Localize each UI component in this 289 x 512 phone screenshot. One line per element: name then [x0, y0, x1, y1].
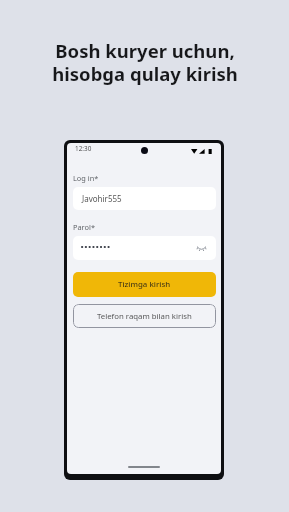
button[interactable]: Tizimga kirish	[73, 272, 216, 297]
button[interactable]: Telefon raqam bilan kirish	[73, 304, 216, 328]
staticText: Bosh kuryer uchun, hisobga qulay kirish	[52, 38, 238, 86]
staticText: Parol*	[73, 222, 95, 232]
button[interactable]: Show password	[73, 236, 216, 260]
staticText: 12:30	[75, 144, 92, 153]
staticText: Tizimga kirish	[118, 279, 171, 290]
staticText: Telefon raqam bilan kirish	[97, 311, 192, 322]
staticText: Log in*	[73, 173, 99, 183]
staticText: Javohir555	[82, 193, 122, 204]
button[interactable]: Show password	[196, 243, 207, 254]
button[interactable]: Javohir555	[73, 187, 216, 210]
